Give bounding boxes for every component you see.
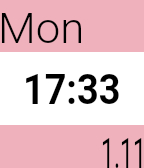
button[interactable]: 1.11: [0, 125, 144, 168]
staticText: 17:33: [23, 65, 121, 114]
staticText: 1.11: [101, 129, 144, 168]
staticText: Mon: [0, 4, 84, 53]
button[interactable]: Mon: [0, 0, 144, 52]
